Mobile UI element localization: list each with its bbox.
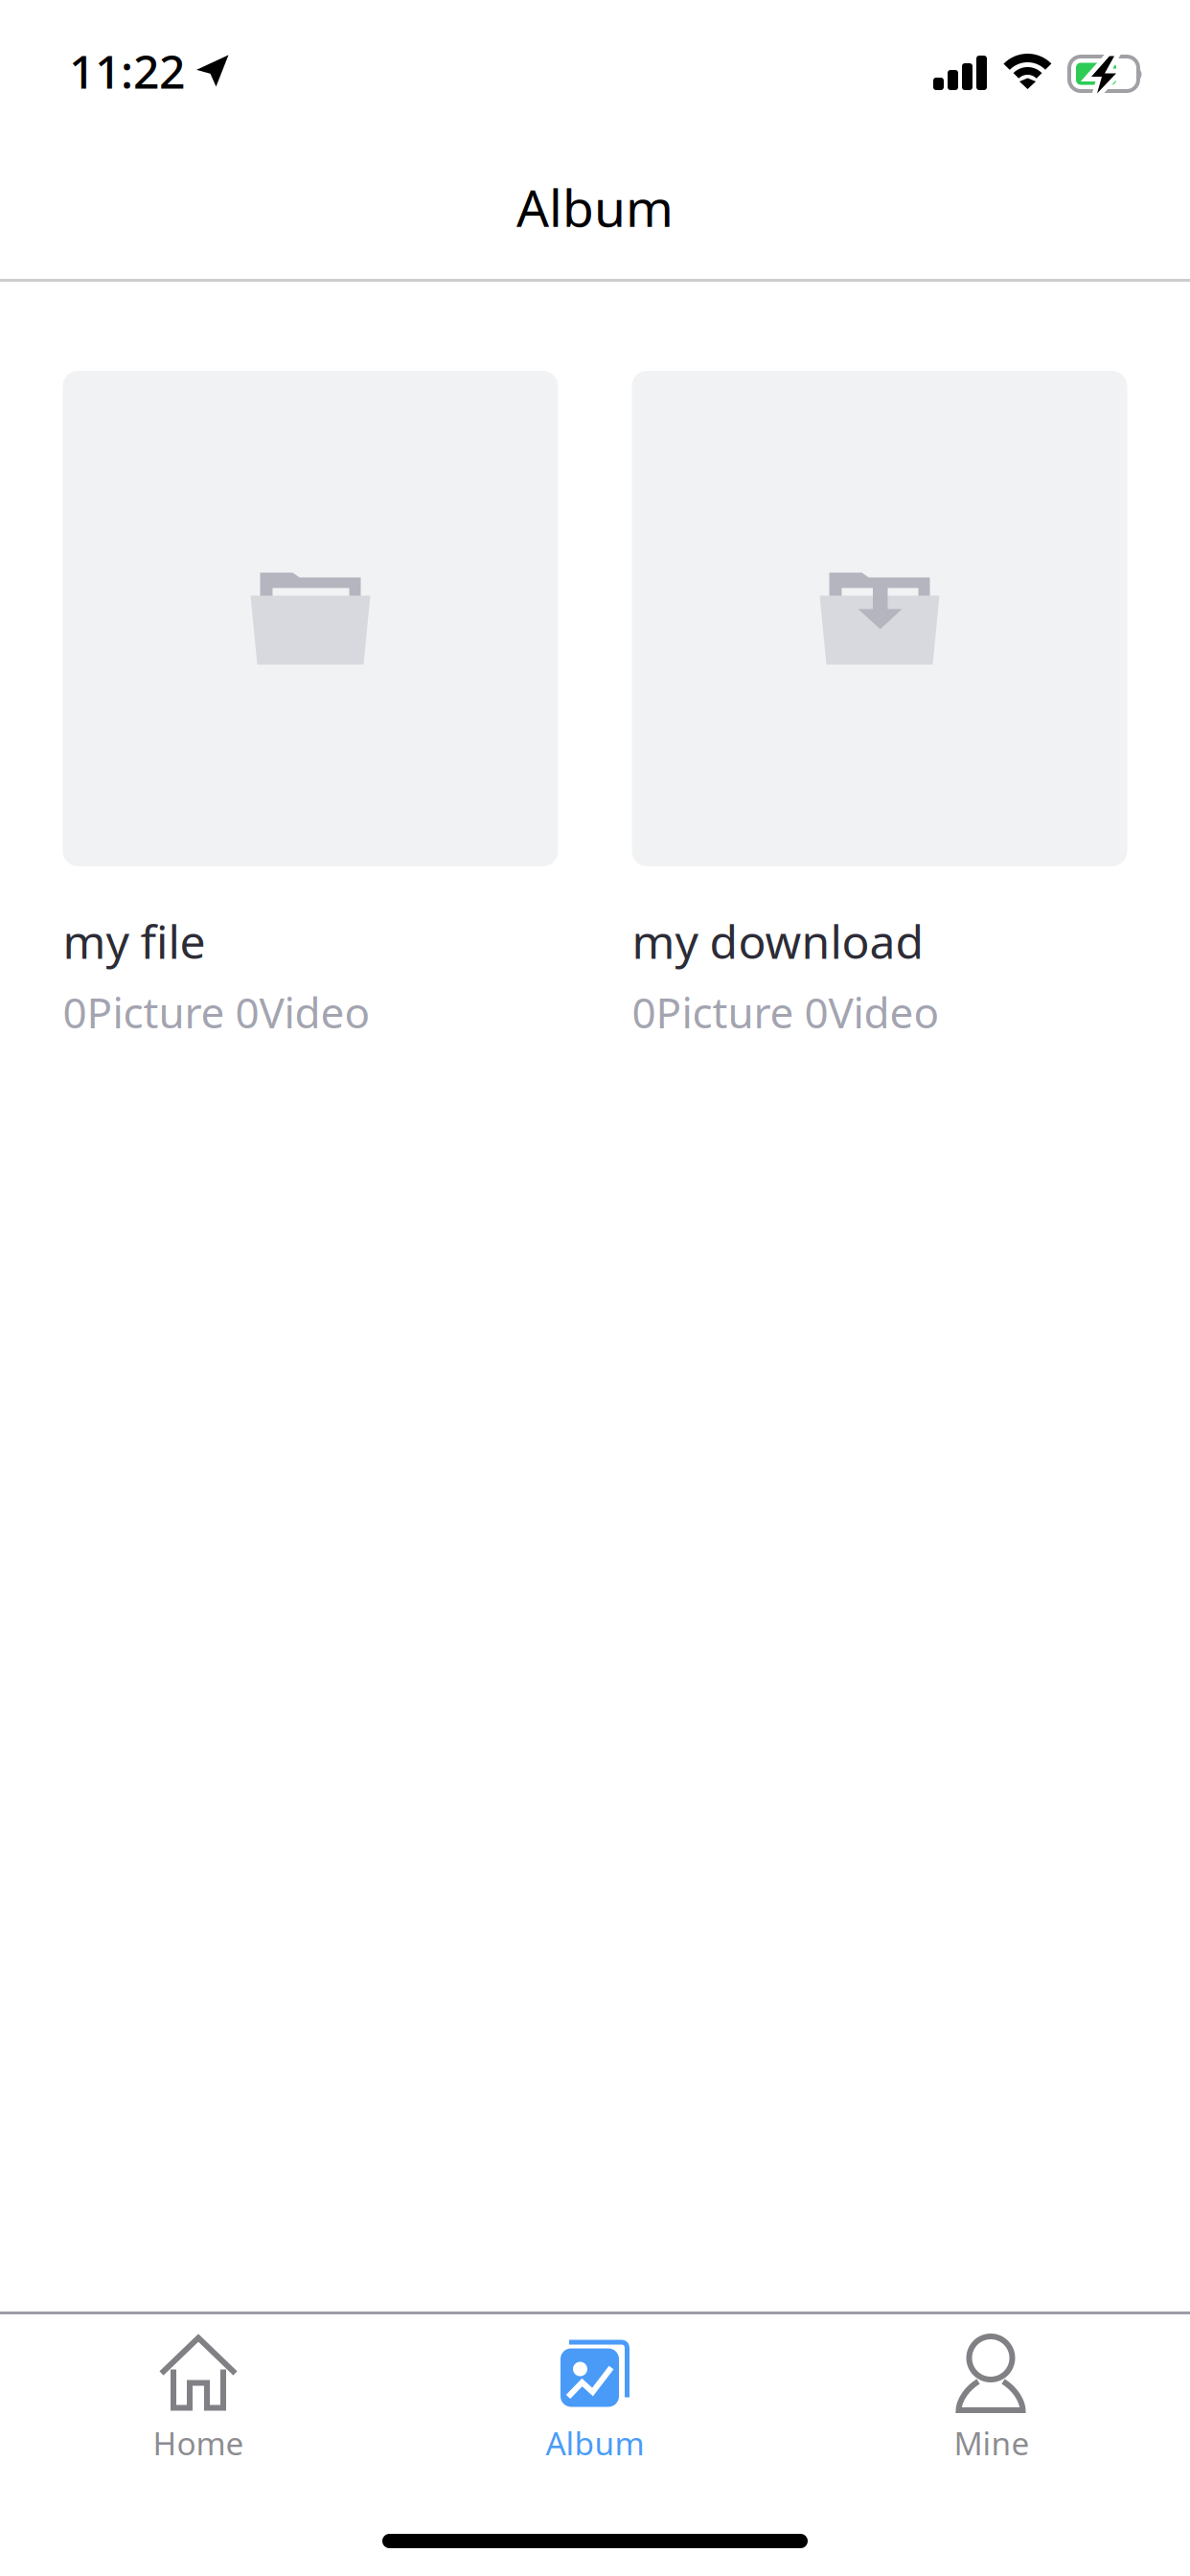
staticText: 0Picture 0Video — [63, 984, 370, 1040]
button[interactable]: Mine — [793, 2314, 1190, 2464]
staticText: my download — [632, 910, 924, 971]
button[interactable]: my download — [632, 371, 1127, 1040]
staticText: 11:22 — [69, 40, 185, 101]
staticText: Album — [546, 2422, 644, 2464]
button[interactable]: my file — [63, 371, 558, 1040]
staticText: my file — [63, 910, 206, 971]
staticText: Home — [153, 2422, 244, 2464]
button[interactable]: Home — [0, 2314, 397, 2464]
staticText: Album — [516, 173, 674, 241]
button[interactable]: Album — [397, 2314, 793, 2464]
staticText: 0Picture 0Video — [632, 984, 939, 1040]
staticText: Mine — [954, 2422, 1030, 2464]
